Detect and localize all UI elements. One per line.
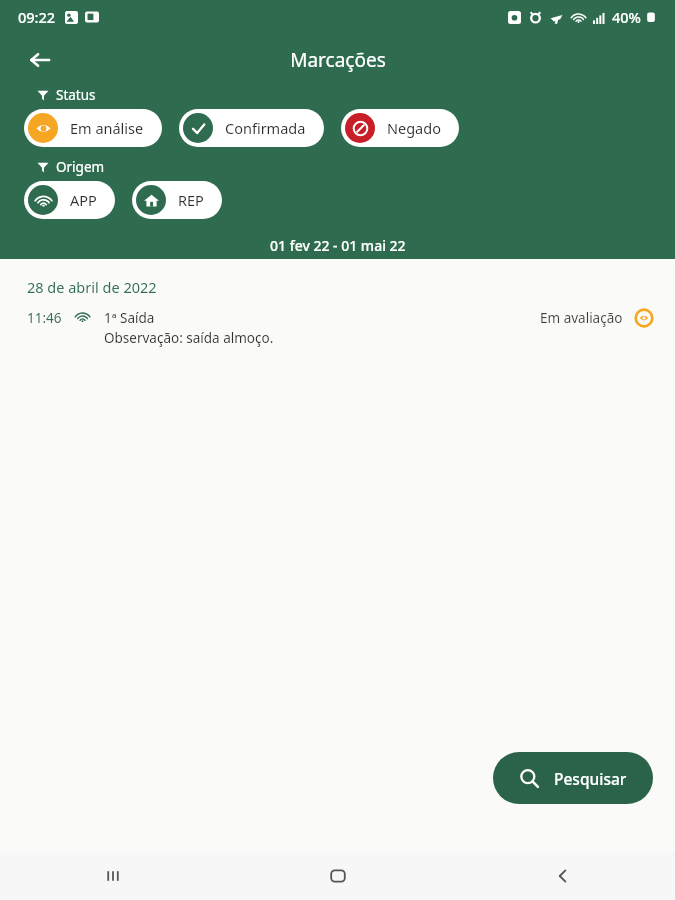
button[interactable]: Recentes [0, 852, 225, 900]
staticText: 1ª Saída [104, 309, 155, 327]
button[interactable]: APP [24, 181, 115, 219]
staticText: Status [56, 86, 96, 104]
staticText: Em avaliação [540, 309, 623, 327]
staticText: 11:46 [27, 309, 62, 327]
staticText: Observação: saída almoço. [104, 329, 274, 347]
staticText: Marcações [290, 47, 386, 73]
staticText: 28 de abril de 2022 [27, 277, 157, 297]
staticText: 01 fev 22 - 01 mai 22 [270, 236, 406, 255]
staticText: Origem [56, 158, 105, 176]
button[interactable]: Voltar [18, 38, 62, 82]
staticText: Confirmada [225, 118, 306, 138]
button[interactable]: 11:46 [0, 309, 675, 347]
staticText: 09:22 [18, 7, 56, 27]
staticText: Pesquisar [554, 768, 627, 789]
staticText: Em análise [70, 118, 144, 138]
staticText: Negado [387, 118, 441, 138]
staticText: APP [70, 190, 97, 210]
staticText: REP [178, 190, 204, 210]
button[interactable]: Voltar [450, 852, 675, 900]
button[interactable]: Negado [341, 109, 459, 147]
button[interactable]: Confirmada [179, 109, 324, 147]
button[interactable]: Em análise [24, 109, 162, 147]
button[interactable]: REP [132, 181, 222, 219]
staticText: 40% [612, 7, 641, 27]
button[interactable]: Início [225, 852, 450, 900]
button[interactable]: Pesquisar [493, 752, 653, 804]
